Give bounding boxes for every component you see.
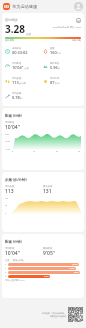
staticText: 2 xyxy=(5,267,8,270)
staticText: 步频 (步/分钟) xyxy=(5,177,27,182)
staticText: 00:33:02 xyxy=(12,50,28,55)
staticText: 米 xyxy=(58,67,60,70)
staticText: 113 xyxy=(12,80,19,85)
staticText: 10'04" xyxy=(5,250,20,257)
staticText: 平均步幅 xyxy=(12,92,22,95)
staticText: 5.96 xyxy=(50,65,58,70)
staticText: 10'04" xyxy=(5,124,20,131)
button[interactable]: 配速 (分钟) xyxy=(2,234,84,298)
staticText: 70 xyxy=(5,204,8,206)
staticText: 10 xyxy=(33,150,36,152)
staticText: 平均配速 xyxy=(5,121,15,124)
staticText: 米 xyxy=(20,97,22,100)
staticText: 5'44" xyxy=(44,275,49,278)
staticText: 平均配速 xyxy=(12,62,22,65)
staticText: 平均步频 xyxy=(12,77,22,80)
staticText: 华为运动健康 xyxy=(12,4,38,9)
staticText: 9'30" xyxy=(5,133,10,135)
button[interactable]: Profile xyxy=(74,2,83,11)
button[interactable]: Share xyxy=(76,18,81,23)
staticText: 公里 xyxy=(26,32,32,35)
staticText: 平均心率 xyxy=(50,77,60,80)
staticText: 160 xyxy=(50,50,57,55)
button[interactable]: 华为运动健康 xyxy=(3,3,10,10)
staticText: 热量 xyxy=(50,47,55,50)
staticText: 平均步频 xyxy=(5,185,15,188)
staticText: 配速 (分钟) xyxy=(5,113,22,118)
staticText: 运动时长 xyxy=(12,47,22,50)
staticText: 10'30" xyxy=(5,140,11,142)
staticText: 9'05" xyxy=(43,250,55,257)
staticText: 11'30" xyxy=(5,148,11,150)
staticText: 20 xyxy=(56,150,59,152)
staticText: 0 xyxy=(12,150,14,152)
staticText: /公里 xyxy=(24,67,29,70)
staticText: 30 xyxy=(78,150,81,152)
staticText: 累计爬升 xyxy=(50,62,60,65)
staticText: 0 xyxy=(5,212,7,214)
staticText: 4 xyxy=(5,275,8,278)
staticText: 配速 (分钟) xyxy=(5,239,22,244)
staticText: 次/分 xyxy=(55,82,60,85)
staticText: 3.28 xyxy=(5,22,25,36)
staticText: 配速 (分钟) xyxy=(13,259,24,262)
staticText: 获取更多运动数据 xyxy=(50,315,66,318)
staticText: 步/分钟 xyxy=(19,82,26,85)
staticText: 有氧 无氧 xyxy=(72,39,81,42)
staticText: 113 xyxy=(5,188,14,195)
button[interactable]: 配速 (分钟) xyxy=(2,108,84,170)
staticText: 公里 xyxy=(5,259,10,262)
staticText: 2025年8月30日 周六 18:23 xyxy=(53,26,81,29)
button[interactable]: 室内跑步 xyxy=(2,13,84,106)
staticText: 千卡 xyxy=(57,52,61,55)
staticText: 平均配速 xyxy=(5,247,15,250)
staticText: 最快配速 xyxy=(43,247,53,250)
staticText: 87 xyxy=(50,80,55,85)
staticText: 3 xyxy=(5,271,8,274)
button[interactable]: 步频 (步/分钟) xyxy=(2,172,84,232)
staticText: 最大步频 xyxy=(43,185,53,188)
staticText: 热身 燃脂 xyxy=(5,39,14,42)
staticText: 扫描查看「华为运动健康」 xyxy=(42,312,66,315)
staticText: 10'04" xyxy=(12,65,24,70)
staticText: 室内跑步 xyxy=(5,18,18,22)
staticText: 1 xyxy=(5,263,8,266)
staticText: 10'15" xyxy=(72,263,78,266)
staticText: 140 xyxy=(5,197,9,199)
staticText: 10'28" xyxy=(69,267,75,270)
staticText: 9'05" xyxy=(74,271,79,274)
staticText: 平均1公里 用时 3'31" xyxy=(5,279,25,282)
staticText: 0.78 xyxy=(12,95,20,100)
staticText: 131 xyxy=(43,188,52,195)
